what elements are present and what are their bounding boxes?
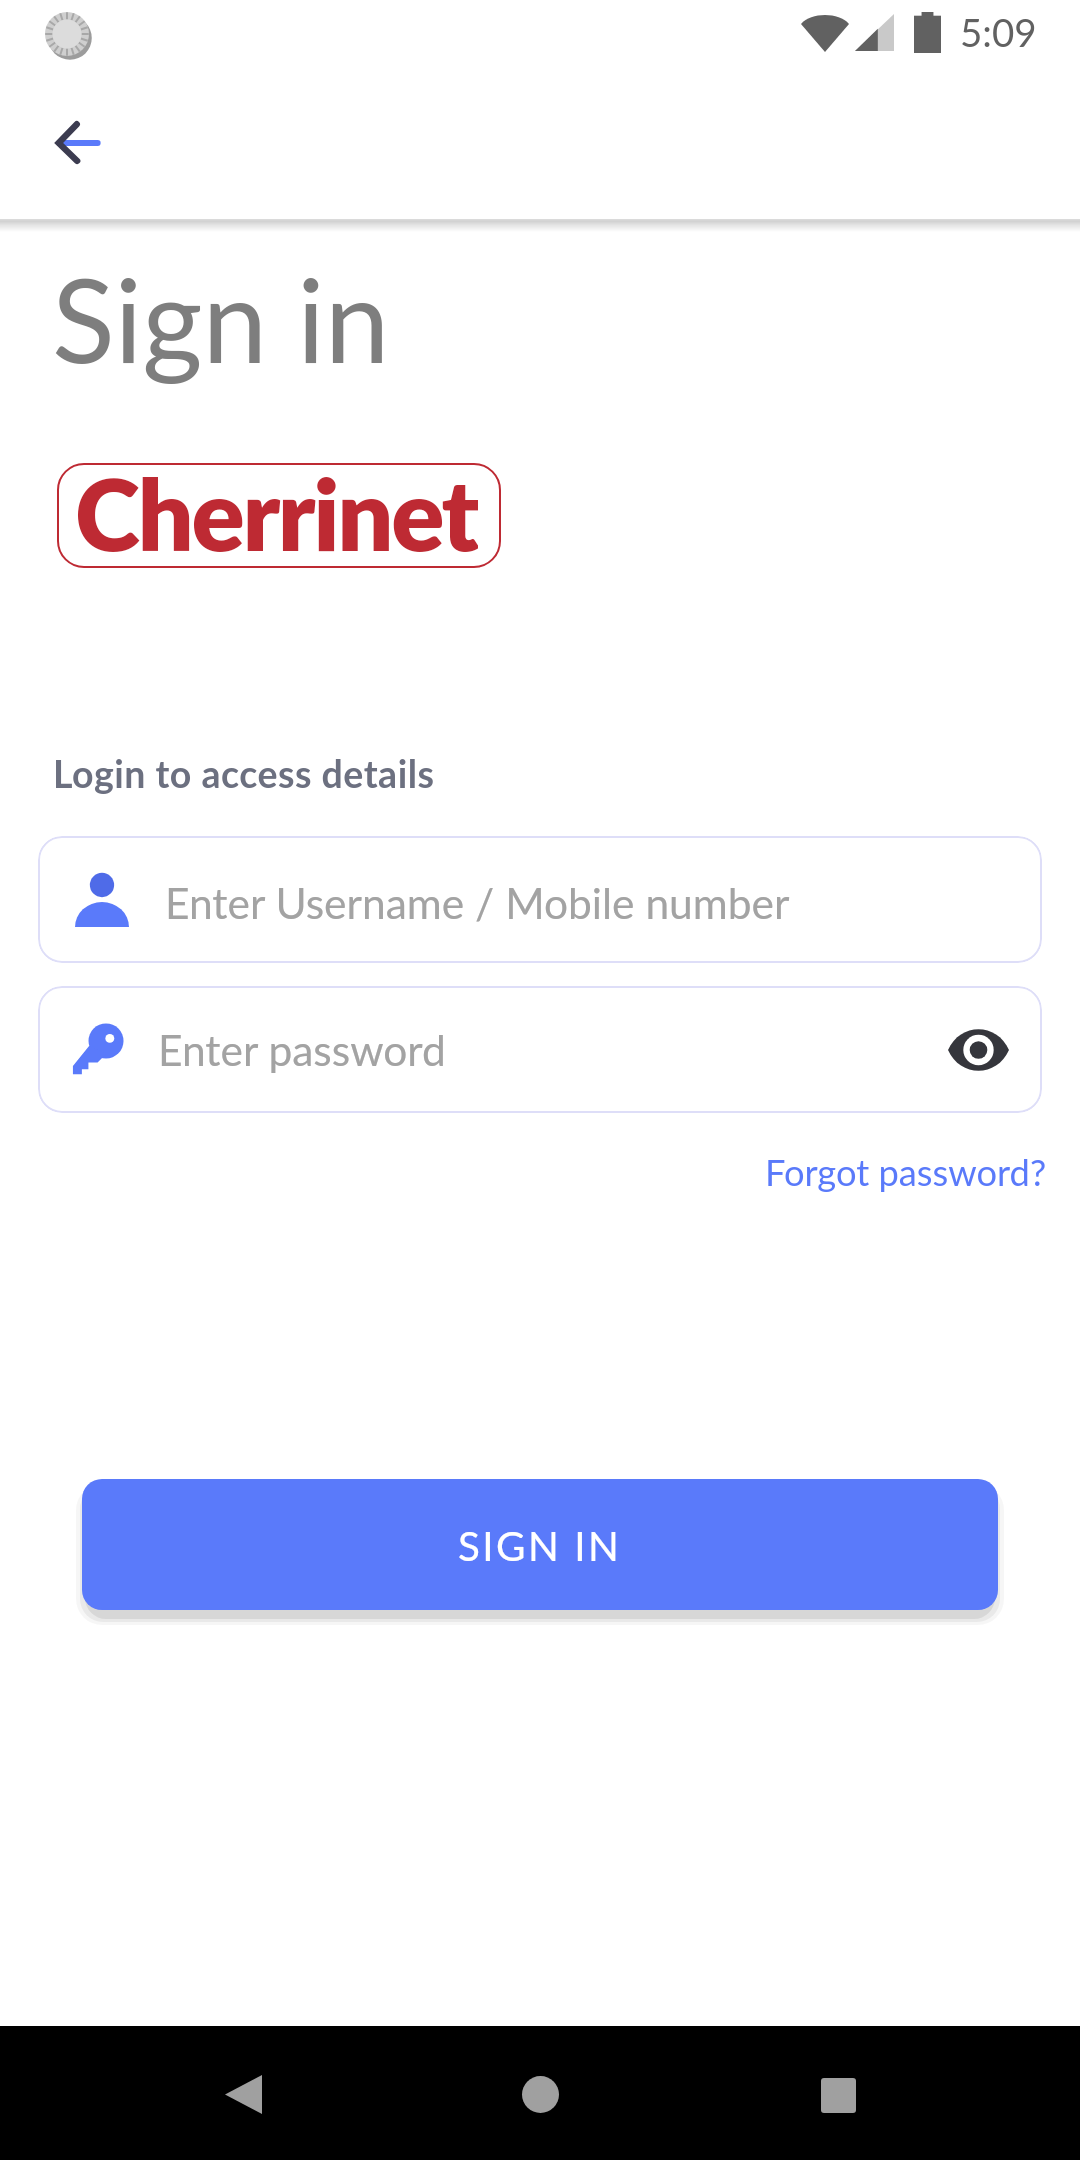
staticText: Enter Username / Mobile number: [165, 877, 790, 928]
button[interactable]: Show password: [934, 1015, 1022, 1085]
button[interactable]: Home: [504, 2058, 576, 2130]
staticText: Enter password: [158, 1024, 446, 1075]
button[interactable]: Back: [207, 2058, 279, 2130]
button[interactable]: Enter Username / Mobile number: [38, 836, 1042, 963]
staticText: Forgot password?: [765, 1150, 1047, 1194]
staticText: 5:09: [960, 9, 1037, 55]
button[interactable]: SIGN IN: [82, 1479, 998, 1610]
button[interactable]: Enter password: [38, 986, 1042, 1113]
staticText: SIGN IN: [458, 1521, 622, 1569]
staticText: Sign in: [52, 249, 390, 388]
staticText: Cherrinet: [75, 453, 478, 558]
button[interactable]: Forgot password?: [753, 1138, 1059, 1206]
button[interactable]: Back: [24, 103, 104, 183]
button[interactable]: Recents: [802, 2059, 874, 2131]
staticText: Login to access details: [53, 751, 435, 796]
